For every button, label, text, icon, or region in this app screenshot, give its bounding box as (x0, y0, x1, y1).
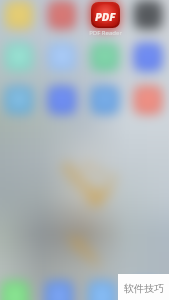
staticText: PDF (95, 9, 116, 24)
staticText: 软件技巧 (124, 282, 164, 295)
button[interactable]: PDF (85, 2, 126, 38)
staticText: PDF Reader (89, 29, 122, 37)
